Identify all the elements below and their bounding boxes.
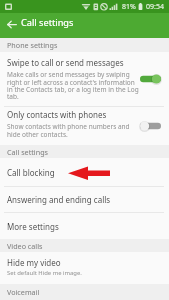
staticText: Hide my video (7, 257, 61, 268)
staticText: Set default Hide me image. (7, 269, 82, 277)
button[interactable]: More settings (0, 213, 169, 239)
staticText: Only contacts with phones (7, 109, 143, 120)
button[interactable]: Call blocking (0, 158, 169, 186)
staticText: Voicemail (7, 287, 40, 297)
staticText: More settings (7, 221, 59, 232)
staticText: Video calls (7, 241, 43, 251)
staticText: Swipe to call or send messages (7, 57, 143, 68)
button[interactable]: Navigate up (0, 13, 20, 38)
staticText: Call settings (21, 16, 74, 29)
staticText: Make calls or send messages by swiping r… (7, 70, 141, 101)
staticText: 81% (122, 2, 136, 12)
staticText: Phone settings (7, 40, 58, 50)
staticText: Call blocking (7, 167, 55, 178)
staticText: Answering and ending calls (7, 194, 111, 205)
button[interactable]: Answering and ending calls (0, 187, 169, 212)
button[interactable]: Swipe to call or send messages (0, 52, 169, 106)
button[interactable]: Turn on (140, 119, 161, 133)
staticText: 09:54 (146, 2, 164, 12)
button[interactable]: Hide my video (0, 252, 169, 284)
staticText: Show contacts with phone numbers and hid… (7, 122, 141, 139)
staticText: Call settings (7, 147, 48, 157)
button[interactable]: Only contacts with phones (0, 107, 169, 145)
button[interactable]: Turn off (140, 72, 161, 86)
